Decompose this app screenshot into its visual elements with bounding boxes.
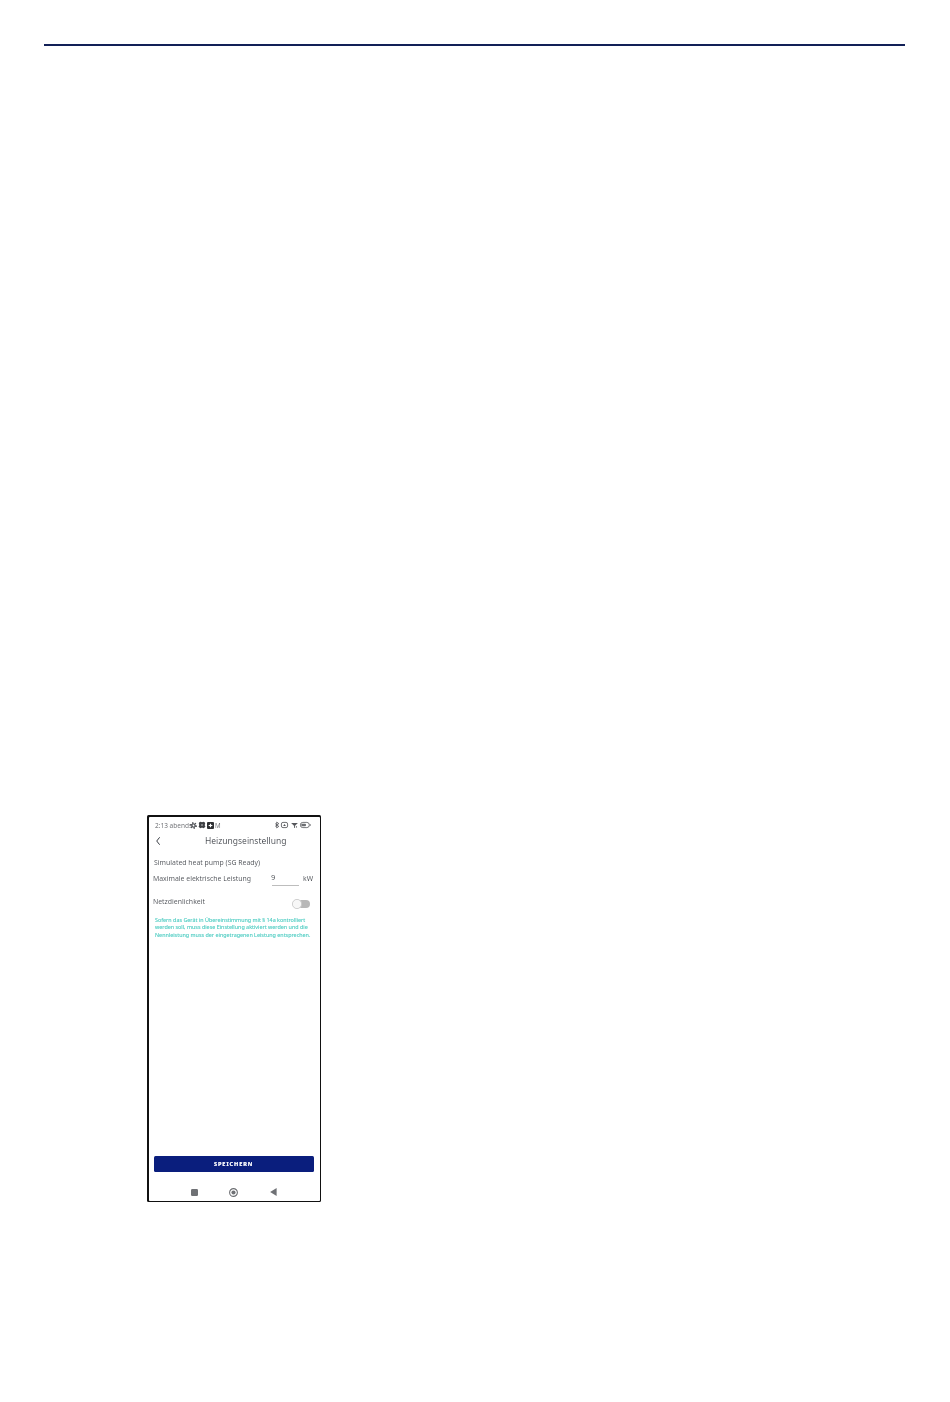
button[interactable]: Back xyxy=(151,834,164,847)
staticText: Maximale elektrische Leistung xyxy=(153,874,252,883)
staticText: 2:13 abends xyxy=(155,821,193,830)
button[interactable]: Recents xyxy=(184,1182,204,1201)
staticText: SPEICHERN xyxy=(214,1160,254,1168)
button[interactable]: Home xyxy=(223,1182,243,1201)
staticText: Simulated heat pump (SG Ready) xyxy=(154,858,261,867)
button[interactable]: 9 xyxy=(271,871,299,887)
staticText: Netzdienlichkeit xyxy=(153,897,205,906)
button[interactable]: Back xyxy=(263,1182,283,1201)
staticText: 9 xyxy=(271,872,276,882)
staticText: kW xyxy=(303,874,314,883)
staticText: Heizungseinstellung xyxy=(205,835,287,847)
staticText: Sofern das Gerät in Übereinstimmung mit … xyxy=(155,916,318,939)
button[interactable]: SPEICHERN xyxy=(154,1156,314,1172)
staticText: M xyxy=(215,821,221,829)
button[interactable]: Netzdienlichkeit xyxy=(152,896,313,910)
